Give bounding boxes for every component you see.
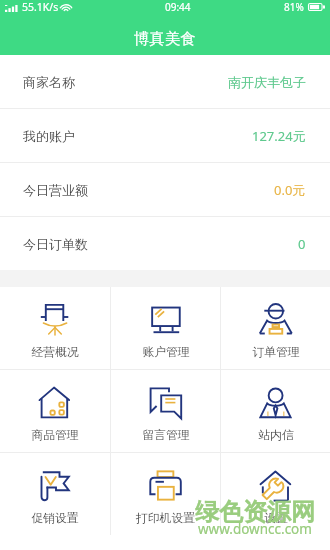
button[interactable]: 促销设置 [0,453,110,535]
staticText: 商家名称 [23,74,75,90]
button[interactable]: 商品管理 [0,370,110,452]
staticText: 0.0元 [274,181,306,199]
staticText: 订单管理 [252,345,300,360]
staticText: 商品管理 [31,428,79,443]
staticText: 55.1K/s [22,0,59,14]
button[interactable]: 订单管理 [221,287,330,369]
staticText: 81% [284,0,304,14]
button[interactable]: 今日订单数 [0,217,330,270]
button[interactable]: 商家名称 [0,55,330,108]
staticText: 127.24元 [252,127,306,145]
button[interactable]: 我的账户 [0,109,330,162]
staticText: 南开庆丰包子 [228,74,306,90]
button[interactable]: 经营概况 [0,287,110,369]
button[interactable]: 留言管理 [111,370,220,452]
button[interactable]: 设置 [221,453,330,535]
button[interactable]: 今日营业额 [0,163,330,216]
staticText: 留言管理 [142,428,190,443]
button[interactable]: 账户管理 [111,287,220,369]
staticText: 博真美食 [134,29,196,49]
staticText: 打印机设置 [136,511,195,526]
button[interactable]: 打印机设置 [111,453,220,535]
staticText: 今日订单数 [23,236,88,252]
staticText: 经营概况 [31,345,79,360]
staticText: 促销设置 [31,511,79,526]
staticText: 今日营业额 [23,182,88,198]
staticText: 0 [298,235,306,253]
staticText: 设置 [264,511,288,526]
staticText: www.downcc.com [198,520,312,538]
staticText: 09:44 [165,0,191,14]
staticText: 我的账户 [23,128,75,144]
button[interactable]: 站内信 [221,370,330,452]
staticText: 账户管理 [142,345,190,360]
staticText: 绿色资源网 [195,497,315,527]
staticText: 站内信 [258,428,294,443]
